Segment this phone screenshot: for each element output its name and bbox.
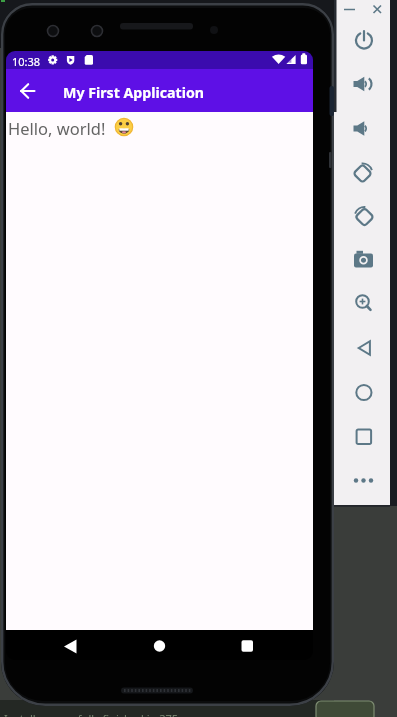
button[interactable] [232,630,262,660]
button[interactable] [346,375,382,409]
button[interactable] [54,630,84,660]
staticText: Hello, world! [8,117,106,139]
button[interactable] [346,286,382,320]
staticText: My First Application [63,83,205,102]
button[interactable] [346,199,382,233]
staticText: 10:38 [12,54,41,69]
button[interactable] [346,331,382,365]
button[interactable]: Hello, world! [6,112,313,630]
button[interactable] [346,419,382,453]
button[interactable] [346,4,359,17]
button[interactable] [144,630,174,660]
button[interactable] [346,243,382,277]
button[interactable] [14,75,42,103]
button[interactable] [346,155,382,189]
button[interactable] [346,23,382,57]
staticText: Install successfully finished in 375 ms [4,711,197,717]
button[interactable] [371,3,384,16]
button[interactable] [346,463,382,497]
button[interactable] [346,111,382,145]
button[interactable] [346,67,382,101]
